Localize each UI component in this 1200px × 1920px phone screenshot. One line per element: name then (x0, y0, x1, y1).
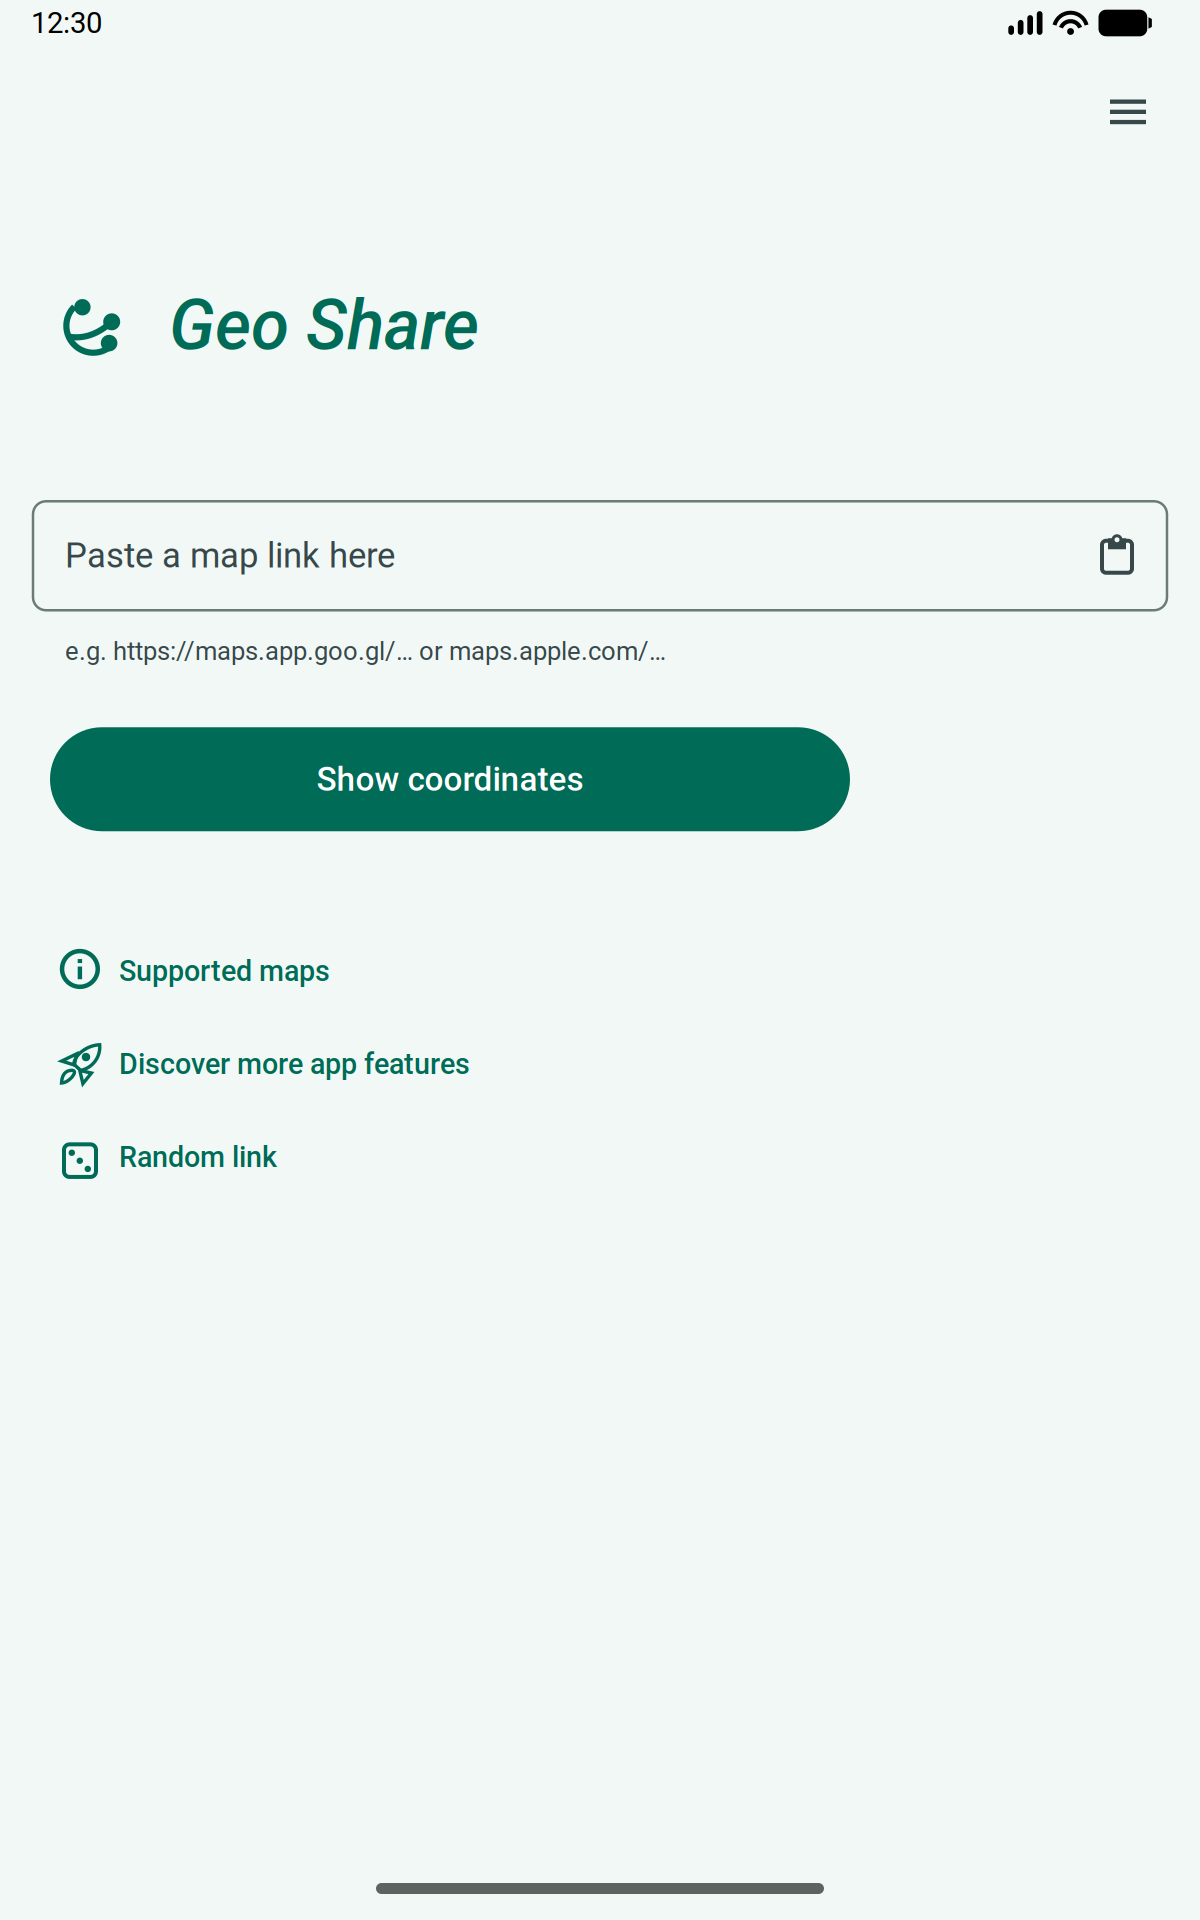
button[interactable]: Supported maps (44, 935, 350, 1007)
staticText: e.g. https://maps.app.goo.gl/… or maps.a… (65, 636, 666, 666)
staticText: Geo Share (169, 285, 479, 366)
staticText: Supported maps (119, 954, 330, 988)
button[interactable]: Show coordinates (50, 727, 850, 831)
staticText: 12:30 (31, 6, 102, 40)
staticText: Random link (119, 1140, 277, 1174)
staticText: Paste a map link here (65, 535, 395, 576)
button[interactable]: Discover more app features (44, 1028, 490, 1100)
button[interactable]: Random link (44, 1121, 300, 1193)
button[interactable]: Paste from clipboard (1080, 519, 1154, 593)
button[interactable]: Paste a map link here (33, 501, 1167, 610)
staticText: Show coordinates (316, 760, 583, 799)
staticText: Discover more app features (119, 1047, 470, 1081)
button[interactable]: Menu (1091, 75, 1165, 149)
